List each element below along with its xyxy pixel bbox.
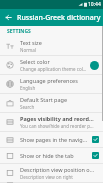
staticText: You can show/hide and reorder pages [20, 123, 96, 129]
staticText: Description view position on landscape m… [20, 166, 96, 173]
button[interactable]: Select color [0, 56, 103, 75]
staticText: English [20, 85, 36, 91]
button[interactable]: Language preferences [0, 75, 103, 94]
button[interactable]: Description view position on landscape m… [0, 164, 103, 183]
staticText: Text size [20, 39, 42, 46]
button[interactable]: Pages visibility and reordering [0, 113, 103, 132]
button[interactable]: Show or hide the tab [0, 148, 103, 164]
staticText: Description view on right [20, 174, 73, 180]
staticText: SETTINGS [7, 28, 31, 35]
staticText: Default Start page [20, 96, 68, 103]
staticText: Show or hide the tab [20, 152, 74, 159]
staticText: Select color [20, 58, 50, 65]
staticText: Change application theme color [20, 66, 87, 72]
staticText: Normal [20, 47, 36, 53]
button[interactable]: Default Start page [0, 94, 103, 113]
staticText: Show pages in the navigation menu [20, 136, 89, 143]
staticText: Russian-Greek dictionary [17, 13, 101, 23]
button[interactable]: Show pages in the navigation menu [0, 132, 103, 148]
staticText: Language preferences [20, 77, 78, 84]
staticText: Pages visibility and reordering [20, 115, 96, 122]
button[interactable]: Text size [0, 37, 103, 56]
button[interactable]: Navigate up [0, 9, 17, 26]
staticText: Search [20, 104, 35, 110]
staticText: 10:44 [88, 1, 101, 8]
